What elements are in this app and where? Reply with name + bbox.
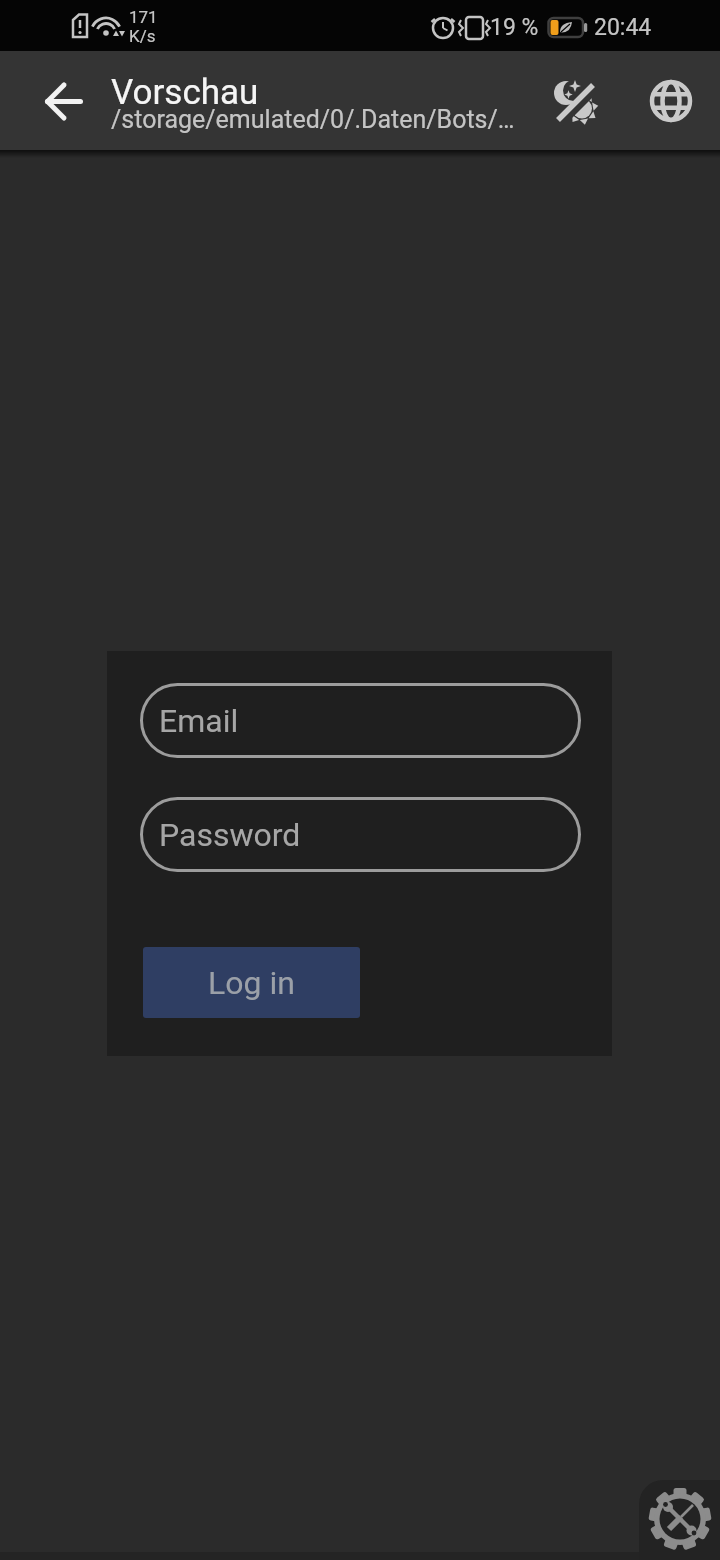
button[interactable]: Log in: [143, 947, 360, 1018]
staticText: Log in: [208, 964, 295, 1002]
staticText: Vorschau: [111, 72, 259, 113]
button[interactable]: [33, 71, 93, 131]
staticText: Email: [159, 702, 239, 740]
button[interactable]: [637, 67, 705, 135]
button[interactable]: [541, 67, 609, 135]
staticText: Password: [159, 816, 301, 854]
staticText: 19 %: [490, 14, 539, 41]
staticText: /storage/emulated/0/.Daten/Bots/…: [111, 105, 515, 134]
button[interactable]: Password: [140, 797, 581, 872]
staticText: K/s: [129, 26, 156, 46]
button[interactable]: Email: [140, 683, 581, 758]
staticText: 171: [129, 7, 158, 27]
button[interactable]: [639, 1480, 720, 1560]
staticText: 20:44: [594, 14, 652, 41]
